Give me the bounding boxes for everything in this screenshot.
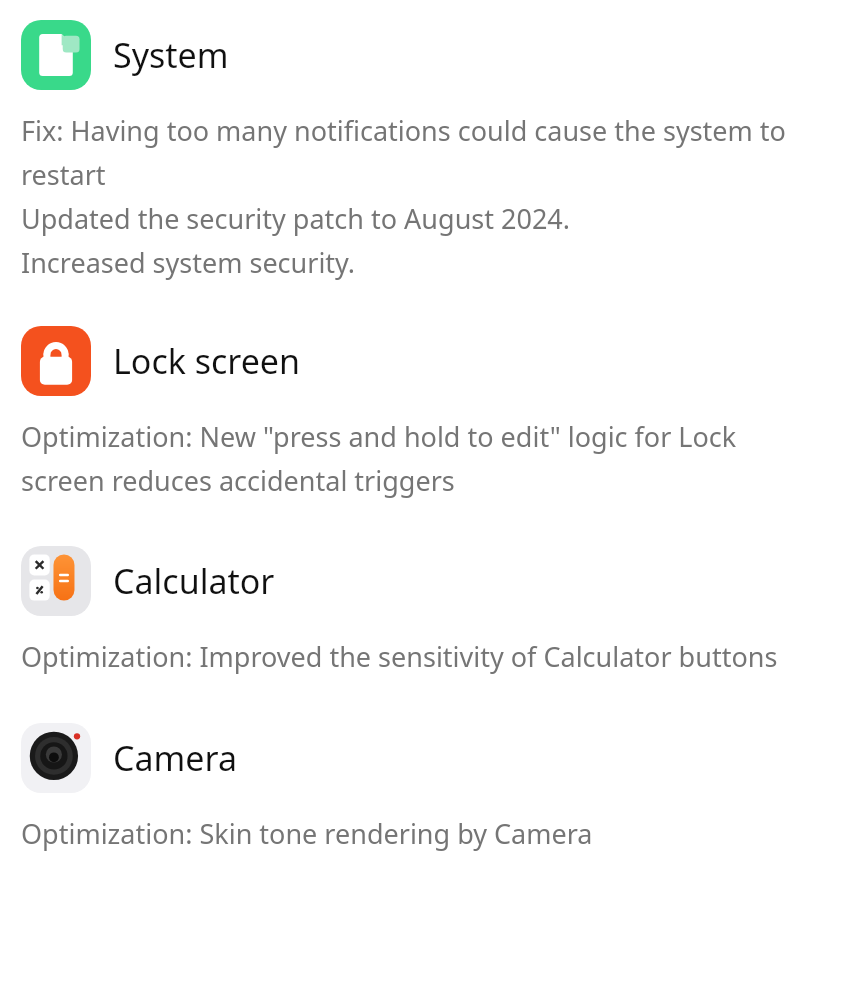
staticText: Lock screen	[113, 338, 301, 384]
button[interactable]: System	[21, 20, 91, 90]
staticText: Optimization: Skin tone rendering by Cam…	[21, 815, 826, 852]
button[interactable]: Calculator	[21, 546, 826, 616]
staticText: System	[113, 32, 229, 78]
button[interactable]: System	[21, 20, 826, 90]
button[interactable]: Calculator	[21, 546, 91, 616]
button[interactable]: Camera	[21, 723, 91, 793]
staticText: Optimization: Improved the sensitivity o…	[21, 638, 826, 675]
staticText: Calculator	[113, 558, 275, 604]
staticText: Camera	[113, 735, 237, 781]
button[interactable]: Lock screen	[21, 326, 91, 396]
staticText: Fix: Having too many notifications could…	[21, 112, 826, 280]
button[interactable]: Camera	[21, 723, 826, 793]
button[interactable]: Lock screen	[21, 326, 826, 396]
staticText: Optimization: New "press and hold to edi…	[21, 418, 826, 498]
